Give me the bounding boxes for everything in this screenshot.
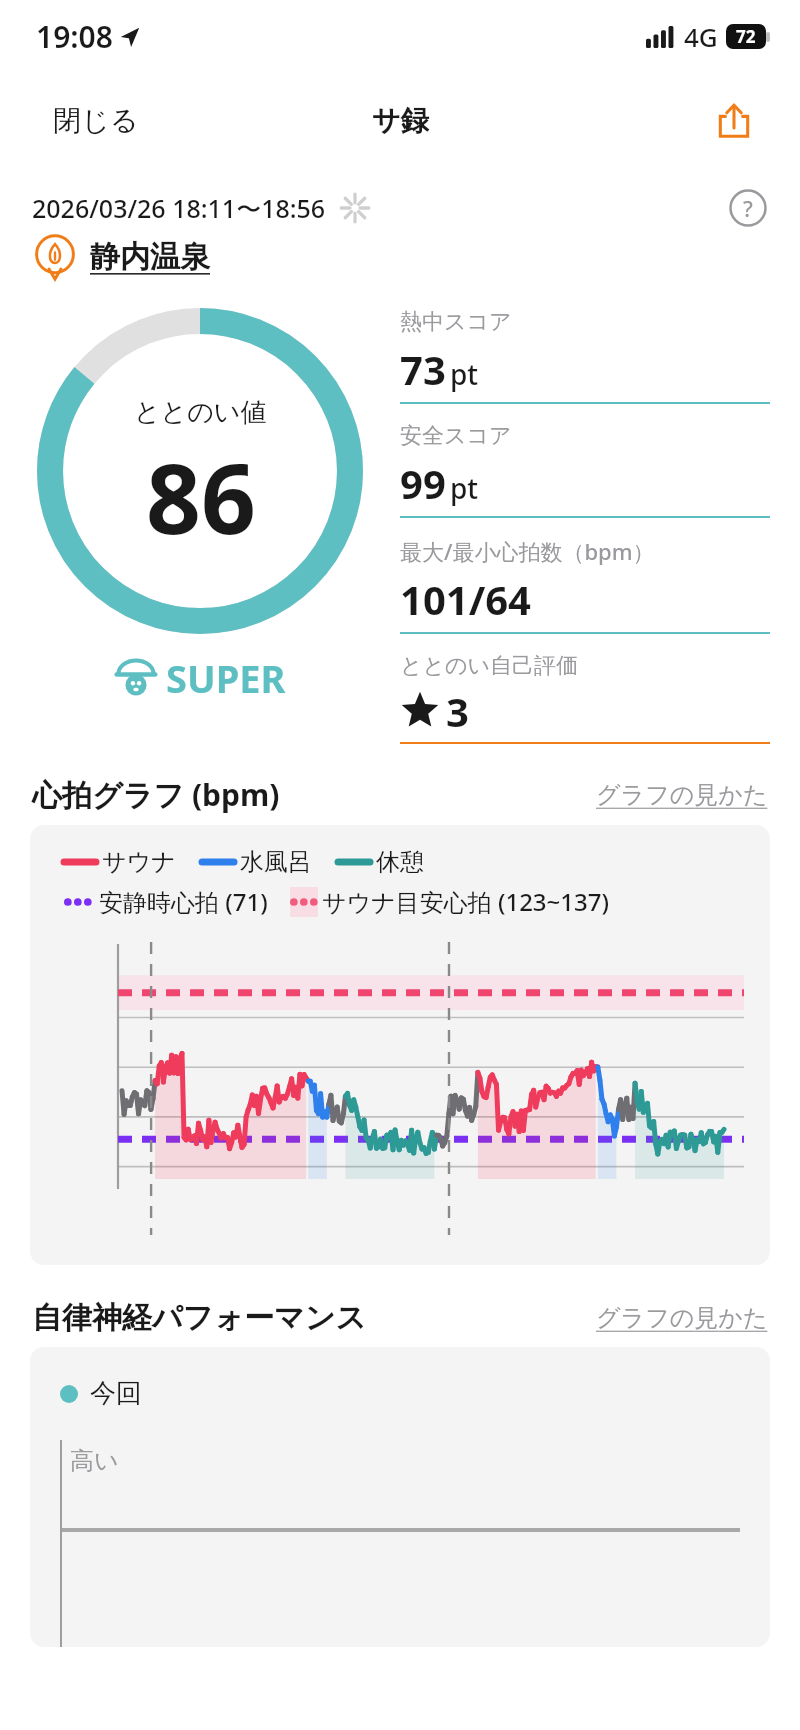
staticText: 熱中スコア xyxy=(400,308,512,336)
staticText: ととのい自己評価 xyxy=(400,652,579,680)
staticText: サウナ目安心拍 (123~137) xyxy=(322,885,609,918)
staticText: サウナ xyxy=(102,847,176,877)
button[interactable]: 閉じる xyxy=(34,82,158,158)
staticText: 安全スコア xyxy=(400,422,512,450)
staticText: 閉じる xyxy=(53,103,139,138)
staticText: pt xyxy=(450,469,479,507)
button[interactable]: グラフの見かた xyxy=(596,1303,768,1333)
staticText: 今回 xyxy=(90,1377,142,1410)
staticText: 4G xyxy=(684,19,718,54)
staticText: サ録 xyxy=(372,103,429,138)
staticText: ? xyxy=(743,193,753,223)
staticText: SUPER xyxy=(166,652,286,704)
staticText: 水風呂 xyxy=(240,847,312,877)
staticText: 心拍グラフ (bpm) xyxy=(32,774,280,815)
button[interactable]: 静内温泉 xyxy=(32,234,768,280)
button[interactable]: Share xyxy=(698,84,770,156)
staticText: 99 xyxy=(400,456,446,510)
staticText: 高い xyxy=(70,1446,119,1476)
staticText: 3 xyxy=(446,684,469,738)
staticText: 86 xyxy=(146,431,256,562)
staticText: 72 xyxy=(736,25,756,48)
staticText: 最大/最小心拍数（bpm） xyxy=(400,536,655,566)
staticText: 101/64 xyxy=(400,572,531,626)
staticText: 2026/03/26 18:11〜18:56 xyxy=(32,191,326,225)
staticText: 安静時心拍 (71) xyxy=(99,885,268,918)
staticText: 静内温泉 xyxy=(90,238,210,276)
staticText: 19:08 xyxy=(36,16,113,57)
button[interactable]: Help xyxy=(728,188,768,228)
staticText: ととのい値 xyxy=(134,396,267,429)
staticText: 休憩 xyxy=(376,847,424,877)
staticText: 自律神経パフォーマンス xyxy=(32,1299,367,1337)
staticText: pt xyxy=(450,355,479,393)
staticText: 73 xyxy=(400,342,446,396)
button[interactable]: グラフの見かた xyxy=(596,780,768,810)
